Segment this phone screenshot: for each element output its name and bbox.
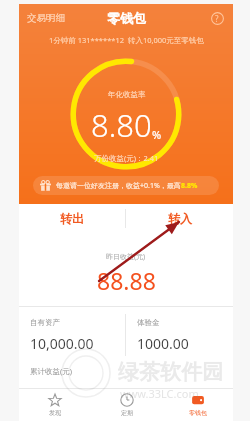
staticText: 自有资产	[30, 318, 60, 327]
staticText: 累计收益(元)	[30, 366, 72, 376]
staticText: 1000.00	[137, 334, 189, 353]
button[interactable]: 帮助	[208, 9, 226, 27]
staticText: 交易明细	[27, 12, 65, 24]
staticText: 发现	[49, 409, 61, 417]
staticText: 转出	[60, 211, 84, 226]
button[interactable]: 每邀请一位好友注册，收益+0.1%，最高	[33, 176, 219, 195]
staticText: 年化收益率	[108, 90, 146, 99]
button[interactable]: 零钱包	[162, 388, 233, 421]
button[interactable]: 转入	[126, 204, 233, 233]
staticText: 体验金	[137, 318, 160, 327]
staticText: www.33LC.com	[120, 386, 199, 401]
staticText: 8.80	[91, 104, 152, 146]
staticText: 1分钟前 131******12 转入10,000元至零钱包	[49, 35, 204, 45]
staticText: 万份收益(元)：2.41	[94, 153, 159, 163]
staticText: 88.88	[97, 265, 156, 296]
staticText: %	[152, 127, 162, 142]
staticText: 零钱包	[189, 409, 207, 417]
staticText: 昨日收益(元)	[106, 252, 146, 262]
staticText: ?	[215, 13, 219, 24]
button[interactable]: 发现	[19, 388, 91, 421]
staticText: 定期	[121, 409, 133, 417]
button[interactable]: 转出	[19, 204, 125, 233]
staticText: 零钱包	[107, 10, 146, 26]
staticText: 转入	[168, 211, 192, 226]
staticText: 绿茶软件园	[118, 359, 223, 385]
staticText: 每邀请一位好友注册，收益+0.1%，最高	[56, 181, 181, 191]
button[interactable]: 交易明细	[19, 8, 71, 28]
staticText: 8.8%	[181, 181, 198, 191]
button[interactable]: 定期	[91, 388, 162, 421]
staticText: 10,000.00	[30, 334, 94, 353]
